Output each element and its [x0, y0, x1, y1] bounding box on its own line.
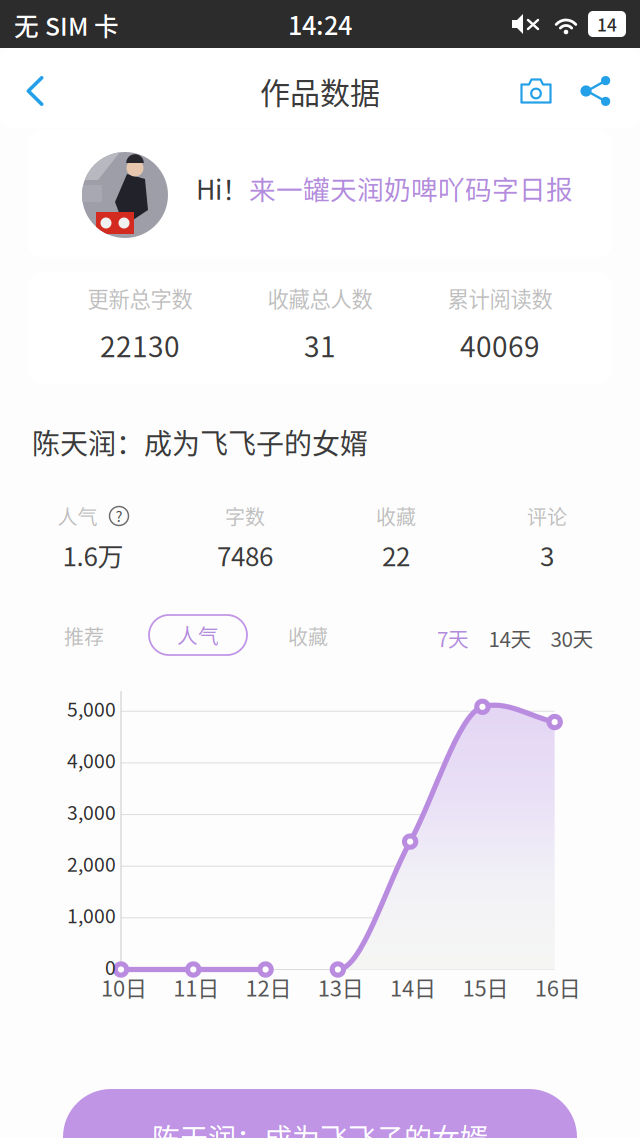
button[interactable]: 30天 — [536, 624, 608, 652]
staticText: 3 — [540, 536, 554, 574]
staticText: 收藏 — [376, 501, 416, 530]
staticText: 人气 — [177, 620, 219, 650]
staticText: 人气 — [57, 501, 97, 530]
staticText: 22130 — [100, 325, 180, 365]
button[interactable]: 人气 — [149, 615, 247, 655]
button[interactable]: 推荐 — [44, 620, 124, 652]
staticText: 4,000 — [67, 746, 116, 774]
staticText: 推荐 — [64, 621, 104, 650]
staticText: 收藏 — [288, 621, 328, 650]
button[interactable]: Camera — [504, 54, 568, 128]
button[interactable]: 7天 — [417, 624, 489, 652]
staticText: 10日 — [101, 971, 147, 1003]
staticText: 1,000 — [67, 901, 116, 929]
staticText: Hi！ — [196, 169, 249, 207]
staticText: 14 — [597, 11, 617, 37]
staticText: 30天 — [550, 623, 593, 653]
staticText: ? — [115, 505, 122, 526]
staticText: 累计阅读数 — [447, 283, 552, 313]
staticText: 22 — [382, 536, 410, 574]
staticText: 13日 — [318, 971, 364, 1003]
staticText: 14天 — [488, 623, 531, 653]
staticText: 12日 — [246, 971, 292, 1003]
staticText: 11日 — [173, 971, 219, 1003]
staticText: 作品数据 — [260, 69, 380, 113]
staticText: 16日 — [535, 971, 581, 1003]
staticText: 31 — [304, 325, 336, 365]
staticText: 字数 — [225, 501, 265, 530]
staticText: 陈天润：成为飞飞子的女婿 — [152, 1117, 488, 1138]
staticText: 评论 — [527, 501, 567, 530]
button[interactable]: 收藏 — [268, 620, 348, 652]
staticText: 15日 — [462, 971, 508, 1003]
button[interactable]: 陈天润：成为飞飞子的女婿 — [63, 1089, 577, 1138]
staticText: 14日 — [390, 971, 436, 1003]
staticText: 来一罐天润奶啤吖码字日报 — [249, 169, 573, 207]
button[interactable]: Share — [564, 54, 628, 128]
staticText: 5,000 — [67, 694, 116, 722]
staticText: 1.6万 — [62, 536, 123, 574]
staticText: 14:24 — [288, 6, 352, 42]
staticText: 更新总字数 — [87, 283, 192, 313]
staticText: 7486 — [217, 536, 273, 574]
button[interactable]: 14天 — [474, 624, 546, 652]
staticText: 7天 — [437, 623, 469, 653]
staticText: 3,000 — [67, 798, 116, 826]
staticText: 0 — [105, 952, 116, 980]
staticText: 40069 — [460, 325, 540, 365]
staticText: 无 SIM 卡 — [14, 7, 119, 43]
button[interactable]: Back — [0, 54, 70, 128]
staticText: 陈天润：成为飞飞子的女婿 — [32, 422, 368, 462]
staticText: 2,000 — [67, 849, 116, 877]
staticText: 收藏总人数 — [267, 283, 372, 313]
